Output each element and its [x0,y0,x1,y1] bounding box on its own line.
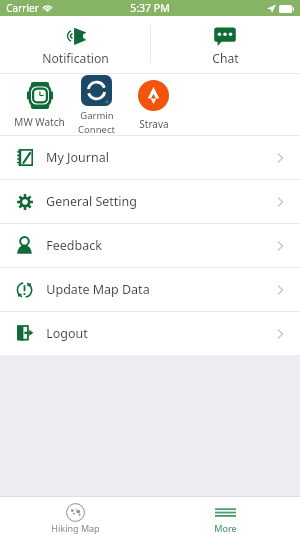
staticText: MW Watch [14,115,65,129]
staticText: Update Map Data [46,281,150,298]
staticText: More [214,522,237,534]
staticText: Connect [78,123,115,135]
button[interactable]: Garmin Connect [68,74,125,135]
other: MW Watch [27,82,53,109]
other: Garmin Connect [81,75,112,106]
staticText: 5:37 PM [130,1,170,15]
other: Strava [138,80,169,111]
staticText: Hiking Map [51,522,100,534]
button[interactable]: General Setting [0,180,300,223]
staticText: Garmin [80,109,114,122]
button[interactable]: Notification [0,16,150,73]
staticText: Logout [46,325,88,342]
button[interactable]: Feedback [0,224,300,267]
button[interactable]: Strava [125,74,182,135]
staticText: My Journal [46,149,109,166]
staticText: Carrier [6,1,39,15]
button[interactable]: My Journal [0,136,300,179]
staticText: General Setting [46,193,137,210]
staticText: Strava [139,117,169,131]
button[interactable]: Update Map Data [0,268,300,311]
button[interactable]: Logout [0,312,300,355]
button[interactable]: More [150,497,300,535]
staticText: Chat [212,50,239,67]
staticText: Feedback [46,237,102,254]
button[interactable]: Hiking Map [0,497,150,535]
button[interactable]: MW Watch [11,74,68,135]
button[interactable]: Chat [150,16,300,73]
staticText: Notification [42,50,109,67]
